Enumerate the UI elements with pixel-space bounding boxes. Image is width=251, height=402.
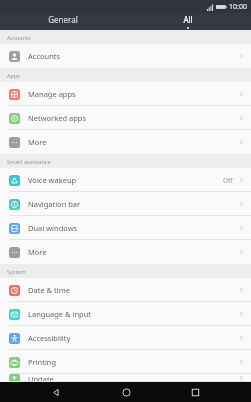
staticText: Printing (28, 357, 57, 367)
button[interactable]: Voice wakeup (0, 168, 251, 192)
staticText: Date & time (28, 285, 70, 295)
button[interactable]: Language & input (0, 302, 251, 326)
button[interactable]: Dual windows (0, 216, 251, 240)
staticText: General (48, 14, 78, 25)
button[interactable]: More (0, 240, 251, 264)
staticText: Accounts (7, 34, 31, 41)
button[interactable]: All (125, 13, 251, 30)
button[interactable]: Date & time (0, 278, 251, 302)
button[interactable]: Accessibility (0, 326, 251, 350)
staticText: Dual windows (28, 223, 78, 233)
staticText: Off (223, 176, 233, 185)
button[interactable]: More (0, 130, 251, 154)
button[interactable]: Networked apps (0, 106, 251, 130)
button[interactable]: Navigation bar (0, 192, 251, 216)
staticText: Update (28, 374, 54, 382)
staticText: Accessibility (28, 333, 71, 343)
button[interactable]: Back (43, 382, 69, 402)
staticText: More (28, 137, 47, 147)
staticText: 10:00 (229, 2, 247, 12)
staticText: Networked apps (28, 113, 86, 123)
staticText: Navigation bar (28, 199, 81, 209)
staticText: Accounts (28, 51, 61, 61)
staticText: Language & input (28, 309, 91, 319)
button[interactable]: General (0, 13, 125, 30)
staticText: Apps (7, 72, 20, 79)
button[interactable]: Update (0, 374, 251, 382)
staticText: Manage apps (28, 89, 76, 99)
staticText: More (28, 247, 47, 257)
staticText: System (7, 268, 26, 275)
staticText: All (183, 14, 193, 25)
button[interactable]: Manage apps (0, 82, 251, 106)
button[interactable]: Printing (0, 350, 251, 374)
button[interactable]: Recent apps (182, 382, 208, 402)
button[interactable]: Accounts (0, 44, 251, 68)
staticText: Smart assistance (7, 158, 51, 165)
button[interactable]: Home (113, 382, 139, 402)
staticText: Voice wakeup (28, 175, 77, 185)
